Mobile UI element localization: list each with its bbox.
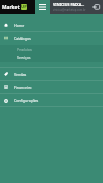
staticText: Produtos [17, 47, 32, 52]
button[interactable]: Market [0, 0, 35, 14]
staticText: VINICIUS PAIXA... [53, 2, 85, 7]
button[interactable]: Financeiro [0, 80, 103, 94]
button[interactable]: VINICIUS PAIXA... [50, 0, 103, 14]
button[interactable]: Configurações [0, 94, 103, 107]
button[interactable]: Serviços [0, 53, 103, 62]
button[interactable]: Vendas [0, 67, 103, 81]
button[interactable]: Home [0, 18, 103, 32]
button[interactable]: Open navigation menu [35, 0, 50, 14]
button[interactable]: Produtos [0, 45, 103, 54]
staticText: UP [21, 4, 27, 10]
staticText: Financeiro [14, 85, 32, 90]
button[interactable]: Catálogos [0, 31, 103, 45]
staticText: vinicius@marketup.com.br [53, 8, 86, 12]
button[interactable]: Logout [89, 0, 103, 14]
staticText: Market [2, 4, 20, 11]
staticText: Home [14, 23, 25, 28]
staticText: Vendas [14, 72, 27, 77]
staticText: Configurações [14, 98, 39, 103]
staticText: Serviços [17, 55, 31, 60]
staticText: Catálogos [14, 36, 31, 41]
